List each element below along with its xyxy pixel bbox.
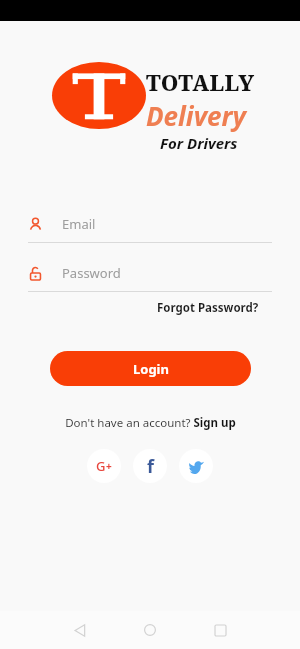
button[interactable]: Sign in with Google [87,449,121,483]
button[interactable]: Forgot Password? [155,298,261,318]
button[interactable]: Login [50,351,251,386]
staticText: Login [133,360,169,378]
staticText: TOTALLY [146,67,255,97]
button[interactable]: Recent apps [196,611,244,649]
button[interactable]: Email [28,215,272,243]
button[interactable]: Home [126,611,174,649]
staticText: Password [62,264,121,282]
button[interactable]: Password [28,264,272,292]
staticText: Email [62,215,96,233]
staticText: f [147,454,154,479]
button[interactable]: Sign in with Facebook [133,449,167,483]
button[interactable]: Back [56,611,104,649]
staticText: Forgot Password? [157,300,259,316]
staticText: Don't have an account? Sign up [65,415,236,431]
staticText: + [106,459,112,473]
staticText: G [96,457,106,475]
button[interactable]: Sign in with Twitter [179,449,213,483]
staticText: Delivery [146,98,246,133]
staticText: For Drivers [160,133,238,149]
button[interactable]: Don't have an account? Sign up [62,412,239,434]
